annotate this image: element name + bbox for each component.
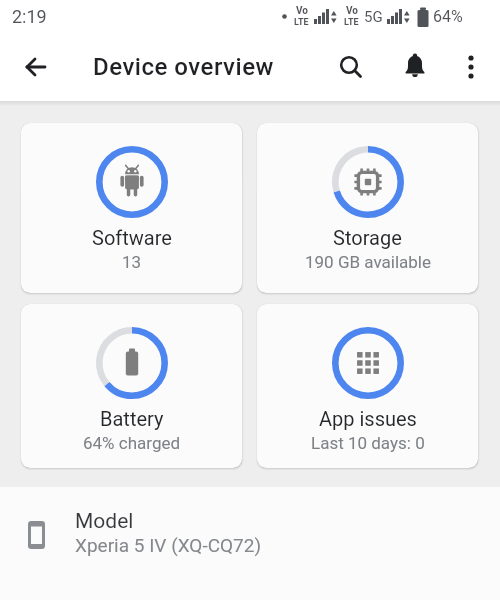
staticText: LTE [294,17,309,28]
staticText: 190 GB available [305,252,431,272]
staticText: Vo [296,5,308,17]
staticText: Storage [333,226,402,249]
staticText: Xperia 5 IV (XQ-CQ72) [75,534,262,556]
staticText: App issues [319,407,417,430]
button[interactable] [393,45,437,89]
staticText: LTE [344,17,359,28]
staticText: 64% charged [83,433,181,453]
staticText: Software [92,226,172,249]
staticText: Last 10 days: 0 [311,433,425,453]
staticText: 64% [433,7,463,26]
staticText: Battery [100,407,164,430]
button[interactable]: Model [0,487,500,570]
staticText: Model [75,509,134,534]
button[interactable]: Battery [21,304,242,468]
staticText: Device overview [93,53,274,81]
staticText: 2:19 [12,6,47,27]
staticText: Vo [346,5,358,17]
staticText: 13 [122,252,142,272]
button[interactable] [450,46,492,88]
button[interactable] [14,45,58,89]
button[interactable]: Storage [257,123,478,293]
button[interactable]: App issues [257,304,478,468]
button[interactable]: Software [21,123,242,293]
staticText: 5G [364,8,383,26]
button[interactable] [328,45,372,89]
